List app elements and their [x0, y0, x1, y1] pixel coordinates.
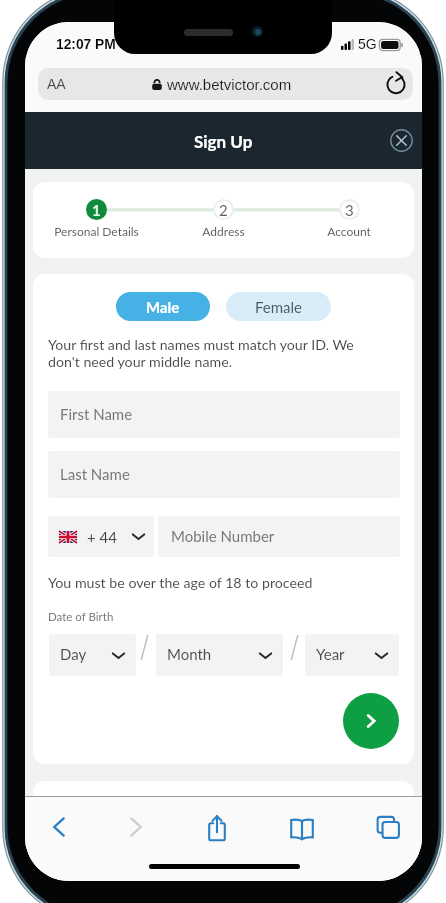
button[interactable]: + 44 [48, 516, 154, 557]
staticText: You must be over the age of 18 to procee… [48, 574, 313, 591]
button[interactable]: AA [38, 68, 413, 100]
staticText: Female [255, 298, 303, 316]
button[interactable]: Share [204, 814, 230, 840]
staticText: Account [327, 224, 371, 238]
staticText: Male [146, 298, 180, 316]
button[interactable]: Year [305, 634, 399, 676]
staticText: + 44 [87, 528, 117, 546]
staticText: Last Name [60, 465, 130, 483]
staticText: 3 [345, 201, 354, 219]
staticText: AA [47, 76, 66, 92]
staticText: First Name [60, 405, 133, 423]
staticText: 2 [219, 201, 228, 219]
button[interactable]: Next [343, 693, 399, 749]
button[interactable]: Forward [123, 814, 149, 840]
button[interactable]: Month [156, 634, 283, 676]
button[interactable]: Female [226, 292, 331, 321]
button[interactable]: Close [389, 128, 414, 153]
staticText: Year [316, 645, 345, 663]
staticText: Your first and last names must match you… [48, 336, 400, 370]
staticText: www.betvictor.com [167, 76, 292, 93]
button[interactable]: Back [46, 814, 72, 840]
button[interactable]: Reload [383, 71, 409, 97]
staticText: 12:07 PM [56, 37, 116, 52]
staticText: 5G [358, 36, 377, 52]
button[interactable]: First Name [48, 391, 400, 438]
button[interactable]: Last Name [48, 451, 400, 498]
button[interactable]: Bookmarks [289, 814, 315, 840]
button[interactable]: Day [49, 634, 136, 676]
staticText: Day [60, 645, 87, 663]
staticText: Sign Up [194, 131, 253, 151]
staticText: 1 [92, 201, 101, 219]
staticText: Personal Details [54, 224, 139, 238]
staticText: Mobile Number [171, 527, 275, 545]
button[interactable]: Male [116, 292, 210, 321]
button[interactable]: Tabs [375, 814, 401, 840]
button[interactable]: Mobile Number [158, 516, 400, 557]
staticText: Month [167, 645, 212, 663]
staticText: Address [202, 224, 245, 238]
staticText: Date of Birth [48, 610, 114, 624]
